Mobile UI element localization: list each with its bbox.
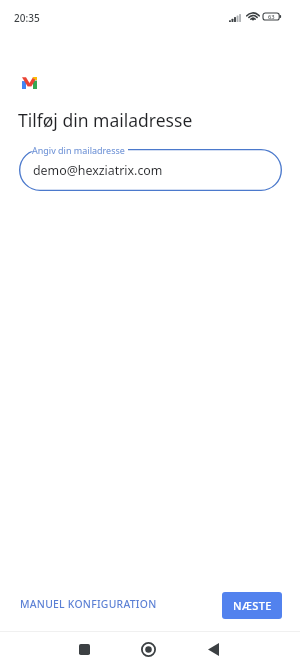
staticText: Angiv din mailadresse	[32, 144, 125, 156]
button[interactable]: Home	[126, 627, 171, 668]
button[interactable]: MANUEL KONFIGURATION	[12, 592, 165, 616]
staticText: demo@hexziatrix.com	[33, 162, 163, 179]
staticText: MANUEL KONFIGURATION	[20, 597, 157, 611]
button[interactable]: Recent apps	[62, 627, 107, 668]
button[interactable]: Back	[191, 627, 236, 668]
staticText: Tilføj din mailadresse	[18, 108, 193, 132]
staticText: NÆSTE	[233, 598, 272, 613]
staticText: 63	[268, 13, 275, 20]
staticText: 20:35	[14, 11, 40, 25]
button[interactable]: NÆSTE	[222, 592, 282, 619]
